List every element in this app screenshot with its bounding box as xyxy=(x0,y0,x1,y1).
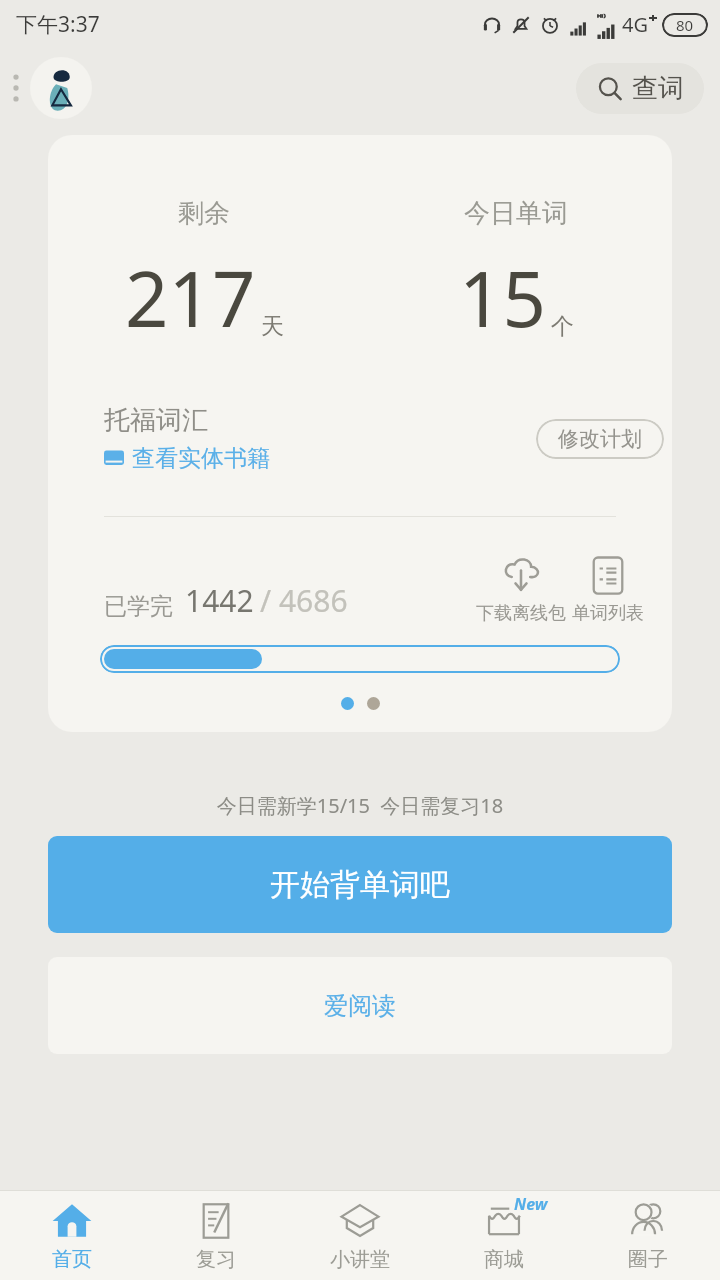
staticText: 托福词汇 xyxy=(104,404,208,437)
staticText: 单词列表 xyxy=(572,602,644,625)
staticText: 15 xyxy=(459,246,546,350)
button[interactable]: New xyxy=(432,1191,576,1280)
staticText: 217 xyxy=(125,246,256,350)
button[interactable]: 下载离线包 xyxy=(476,553,566,625)
staticText: 商城 xyxy=(484,1247,524,1272)
button[interactable]: 开始背单词吧 xyxy=(48,836,672,933)
staticText: 下午3:37 xyxy=(16,10,100,39)
staticText: 天 xyxy=(261,312,284,341)
staticText: 下载离线包 xyxy=(476,602,566,625)
staticText: 已学完 xyxy=(104,592,173,621)
staticText: 小讲堂 xyxy=(330,1247,390,1272)
staticText: 圈子 xyxy=(628,1247,668,1272)
staticText: 个 xyxy=(551,312,574,341)
staticText: / 4686 xyxy=(260,580,348,621)
button[interactable]: 查看实体书籍 xyxy=(104,444,270,473)
button[interactable]: 查词 xyxy=(596,72,684,105)
button[interactable]: Menu xyxy=(10,71,22,105)
staticText: 查词 xyxy=(632,72,684,105)
staticText: 开始背单词吧 xyxy=(270,866,450,904)
button[interactable]: 小讲堂 xyxy=(288,1191,432,1280)
staticText: 爱阅读 xyxy=(324,991,396,1021)
button[interactable]: 圈子 xyxy=(576,1191,720,1280)
staticText: 首页 xyxy=(52,1247,92,1272)
staticText: 复习 xyxy=(196,1247,236,1272)
button[interactable]: 修改计划 xyxy=(536,419,664,459)
staticText: 修改计划 xyxy=(558,426,642,452)
button[interactable]: 爱阅读 xyxy=(48,957,672,1054)
staticText: 今日单词 xyxy=(464,197,568,230)
staticText: 查看实体书籍 xyxy=(132,444,270,473)
staticText: 80 xyxy=(676,15,694,35)
staticText: New xyxy=(514,1193,548,1215)
staticText: 4G xyxy=(622,11,648,38)
staticText: 1442 xyxy=(185,580,254,621)
button[interactable]: 复习 xyxy=(144,1191,288,1280)
button[interactable]: Profile xyxy=(30,57,92,119)
button[interactable]: 单词列表 xyxy=(572,555,644,625)
button[interactable]: 首页 xyxy=(0,1191,144,1280)
staticText: 剩余 xyxy=(178,197,230,230)
staticText: 今日需新学15/15 今日需复习18 xyxy=(0,792,720,819)
